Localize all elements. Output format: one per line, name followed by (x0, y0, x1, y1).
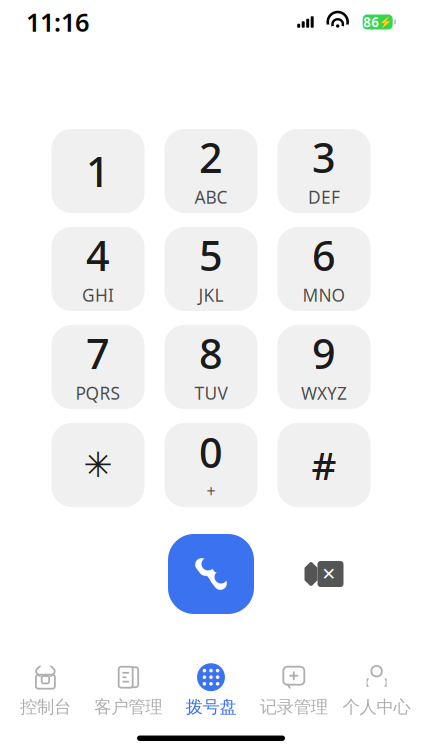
staticText: 3 (312, 129, 336, 184)
staticText: ✕ (321, 564, 336, 584)
button[interactable]: 7 (51, 325, 144, 409)
staticText: 2 (199, 129, 223, 184)
staticText: 86 (363, 13, 379, 31)
staticText: 8 (199, 325, 223, 380)
button[interactable]: 5 (164, 227, 257, 311)
button[interactable]: 3 (277, 129, 370, 213)
button[interactable]: 记录管理 (252, 659, 335, 721)
staticText: 客户管理 (94, 696, 162, 717)
staticText: ✳ (83, 445, 112, 485)
staticText: MNO (302, 283, 345, 306)
button[interactable]: 9 (277, 325, 370, 409)
button[interactable]: 6 (277, 227, 370, 311)
staticText: 控制台 (20, 696, 71, 717)
staticText: 记录管理 (260, 696, 328, 717)
button[interactable]: 8 (164, 325, 257, 409)
staticText: 11:16 (26, 5, 89, 39)
staticText: JKL (198, 283, 223, 306)
staticText: GHI (82, 283, 114, 306)
button[interactable]: Call (168, 534, 254, 614)
staticText: 个人中心 (343, 696, 411, 717)
button[interactable]: 0 (164, 423, 257, 507)
staticText: ABC (194, 185, 227, 208)
staticText: ⚡ (379, 16, 392, 28)
button[interactable]: 控制台 (4, 659, 87, 721)
button[interactable]: 1 (51, 129, 144, 213)
button[interactable]: 2 (164, 129, 257, 213)
staticText: 1 (86, 144, 110, 198)
button[interactable]: 个人中心 (335, 659, 418, 721)
staticText: 0 (199, 424, 223, 479)
staticText: 7 (86, 325, 110, 380)
staticText: 6 (312, 227, 336, 282)
button[interactable]: 客户管理 (87, 659, 170, 721)
staticText: 9 (312, 325, 336, 380)
staticText: 4 (86, 227, 110, 282)
button[interactable]: # (277, 423, 370, 507)
staticText: # (311, 439, 336, 491)
button[interactable]: Delete (298, 554, 350, 594)
staticText: WXYZ (301, 381, 347, 404)
staticText: 5 (199, 227, 223, 282)
staticText: TUV (194, 381, 227, 404)
staticText: PQRS (75, 381, 120, 404)
staticText: 拨号盘 (185, 696, 236, 717)
staticText: + (206, 480, 215, 501)
button[interactable]: ✳ (51, 423, 144, 507)
button[interactable]: 4 (51, 227, 144, 311)
staticText: DEF (308, 185, 340, 208)
button[interactable]: 拨号盘 (170, 659, 252, 721)
